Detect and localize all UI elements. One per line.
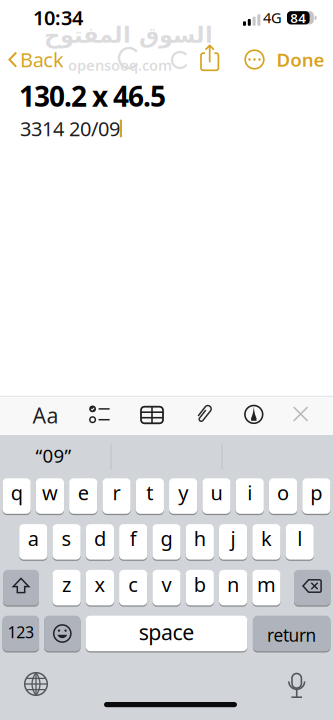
staticText: 4G [263, 8, 282, 27]
button[interactable]: i [236, 478, 264, 514]
staticText: x [94, 571, 105, 597]
staticText: b [194, 571, 206, 597]
button[interactable]: g [152, 524, 181, 560]
button[interactable]: return [253, 616, 330, 651]
button[interactable]: More [240, 45, 268, 73]
button[interactable]: k [252, 524, 280, 560]
staticText: 84 [290, 9, 306, 27]
staticText: 123 [7, 621, 34, 642]
button[interactable]: Next keyboard [16, 664, 56, 704]
button[interactable]: 123 [3, 616, 39, 651]
staticText: Aa [32, 401, 58, 429]
staticText: i [247, 479, 252, 506]
button[interactable]: w [36, 478, 64, 514]
button[interactable]: space [86, 616, 247, 651]
button[interactable]: u [202, 478, 230, 514]
staticText: السوق المفتوح [43, 22, 212, 48]
button[interactable]: r [102, 478, 131, 514]
staticText: e [78, 479, 89, 506]
button[interactable]: Back [2, 41, 66, 77]
button[interactable]: Share [196, 43, 224, 73]
staticText: s [62, 525, 72, 552]
button[interactable]: “09” [0, 438, 108, 472]
button[interactable]: Attach [188, 399, 218, 429]
button[interactable]: Done [269, 41, 331, 77]
button[interactable]: q [2, 478, 31, 514]
button[interactable]: a [19, 524, 47, 560]
button[interactable]: v [152, 570, 181, 605]
button[interactable]: Delete [294, 570, 330, 605]
staticText: t [146, 479, 153, 506]
staticText: c [128, 571, 138, 597]
staticText: j [231, 525, 236, 552]
staticText: “09” [35, 443, 71, 468]
staticText: f [130, 525, 137, 552]
staticText: q [11, 479, 23, 506]
button[interactable]: t [136, 478, 164, 514]
staticText: p [310, 479, 322, 506]
staticText: 130.2 x 46.5 [19, 77, 166, 115]
staticText: y [178, 479, 188, 506]
button[interactable]: Table [137, 400, 167, 430]
staticText: g [160, 525, 172, 552]
button[interactable]: s [52, 524, 81, 560]
staticText: l [297, 525, 302, 552]
button[interactable]: m [252, 570, 280, 605]
staticText: r [112, 479, 120, 506]
staticText: return [267, 623, 316, 646]
button[interactable]: Format [28, 400, 62, 430]
button[interactable]: h [186, 524, 214, 560]
button[interactable]: e [69, 478, 97, 514]
staticText: 10:34 [33, 4, 83, 31]
button[interactable]: f [119, 524, 147, 560]
staticText: a [28, 525, 39, 552]
staticText: m [257, 571, 276, 597]
button[interactable]: Checklist [84, 399, 114, 429]
staticText: k [261, 525, 272, 552]
staticText: w [42, 479, 58, 506]
staticText: h [194, 525, 206, 552]
button[interactable]: Emoji [44, 616, 80, 651]
staticText: space [139, 618, 194, 646]
button[interactable]: n [219, 570, 247, 605]
staticText: v [161, 571, 171, 597]
button[interactable]: Shift [3, 570, 39, 605]
staticText: Done [277, 47, 324, 72]
button[interactable]: z [52, 570, 81, 605]
staticText: opensooq.com [68, 55, 172, 75]
button[interactable]: y [169, 478, 197, 514]
button[interactable]: Close [286, 399, 316, 429]
button[interactable]: x [86, 570, 114, 605]
staticText: o [277, 479, 289, 506]
staticText: n [227, 571, 239, 597]
staticText: z [62, 571, 71, 597]
button[interactable]: d [86, 524, 114, 560]
button[interactable]: c [119, 570, 147, 605]
staticText: d [94, 525, 106, 552]
button[interactable]: o [269, 478, 297, 514]
button[interactable]: p [302, 478, 330, 514]
button[interactable]: j [219, 524, 247, 560]
button[interactable]: b [186, 570, 214, 605]
button[interactable]: Markup [239, 399, 269, 429]
staticText: Back [20, 46, 64, 73]
button[interactable]: l [286, 524, 314, 560]
button[interactable]: Dictate [277, 664, 317, 704]
staticText: u [210, 479, 222, 506]
staticText: 3314 20/09 [20, 115, 120, 142]
